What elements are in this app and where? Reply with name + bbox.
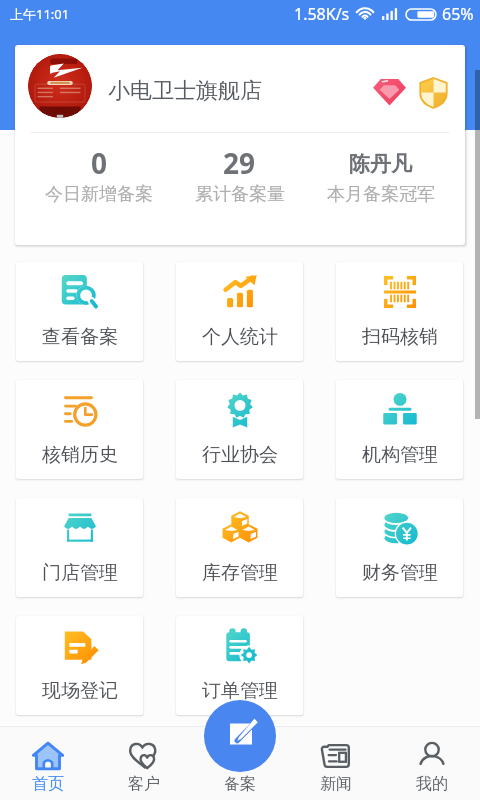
staticText: 订单管理 (202, 679, 278, 703)
button[interactable]: 新闻 (288, 726, 384, 800)
button[interactable]: 0 (29, 133, 169, 245)
staticText: 扫码核销 (362, 325, 438, 349)
button[interactable]: 首页 (0, 726, 96, 800)
staticText: 小电卫士旗舰店 (108, 77, 262, 105)
staticText: 1.58K/s (294, 3, 350, 25)
staticText: 我的 (416, 774, 448, 794)
staticText: 行业协会 (202, 443, 278, 467)
staticText: 现场登记 (42, 679, 118, 703)
staticText: 门店管理 (42, 561, 118, 585)
staticText: 29 (223, 144, 256, 182)
button[interactable]: 29 (169, 133, 310, 245)
button[interactable]: 我的 (384, 726, 480, 800)
staticText: 财务管理 (362, 561, 438, 585)
staticText: 上午11:01 (10, 5, 70, 23)
button[interactable]: 备案 (192, 726, 288, 800)
button[interactable]: 财务管理 (336, 498, 463, 597)
button[interactable]: 行业协会 (176, 380, 303, 479)
button[interactable]: 新建备案 (204, 700, 276, 772)
staticText: 今日新增备案 (45, 183, 153, 206)
staticText: 核销历史 (42, 443, 118, 467)
button[interactable]: 核销历史 (16, 380, 143, 479)
staticText: 个人统计 (202, 325, 278, 349)
button[interactable]: 现场登记 (16, 616, 143, 715)
staticText: 首页 (32, 774, 64, 794)
button[interactable]: 查看备案 (16, 262, 143, 361)
staticText: 陈丹凡 (349, 151, 412, 177)
button[interactable]: 扫码核销 (336, 262, 463, 361)
staticText: 65% (442, 3, 474, 25)
button[interactable]: 库存管理 (176, 498, 303, 597)
staticText: 本月备案冠军 (327, 183, 435, 206)
staticText: 备案 (224, 774, 256, 794)
button[interactable]: 订单管理 (176, 616, 303, 715)
staticText: 机构管理 (362, 443, 438, 467)
staticText: 客户 (128, 774, 160, 794)
button[interactable]: 个人统计 (176, 262, 303, 361)
button[interactable]: 客户 (96, 726, 192, 800)
button[interactable]: 门店管理 (16, 498, 143, 597)
button[interactable]: 机构管理 (336, 380, 463, 479)
staticText: 累计备案量 (195, 183, 285, 206)
staticText: 0 (91, 144, 108, 182)
staticText: 新闻 (320, 774, 352, 794)
button[interactable]: 陈丹凡 (310, 133, 451, 245)
staticText: 查看备案 (42, 325, 118, 349)
staticText: 库存管理 (202, 561, 278, 585)
